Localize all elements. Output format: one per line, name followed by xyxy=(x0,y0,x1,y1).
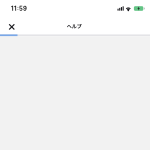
button[interactable]: Close xyxy=(0,17,23,34)
staticText: ヘルプ xyxy=(67,22,82,30)
staticText: 11:59 xyxy=(11,5,27,12)
